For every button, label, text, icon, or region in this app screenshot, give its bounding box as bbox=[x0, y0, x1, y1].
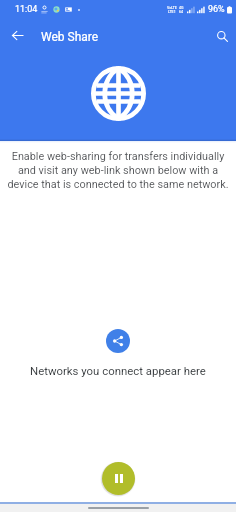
button[interactable]: Pause bbox=[102, 462, 135, 495]
button[interactable]: Share bbox=[106, 329, 130, 353]
staticText: 4G bbox=[179, 6, 184, 10]
button[interactable]: Search bbox=[204, 19, 236, 53]
staticText: 64 bbox=[179, 10, 184, 14]
staticText: 96% bbox=[208, 4, 225, 15]
staticText: LTE1 bbox=[168, 10, 176, 14]
staticText: Enable web-sharing for transfers individ… bbox=[4, 150, 232, 191]
staticText: 11:04 bbox=[15, 4, 38, 15]
staticText: Web Share bbox=[41, 30, 99, 44]
button[interactable]: Back bbox=[0, 18, 35, 52]
staticText: Networks you connect appear here bbox=[30, 364, 206, 377]
staticText: VoLTE bbox=[167, 6, 177, 10]
